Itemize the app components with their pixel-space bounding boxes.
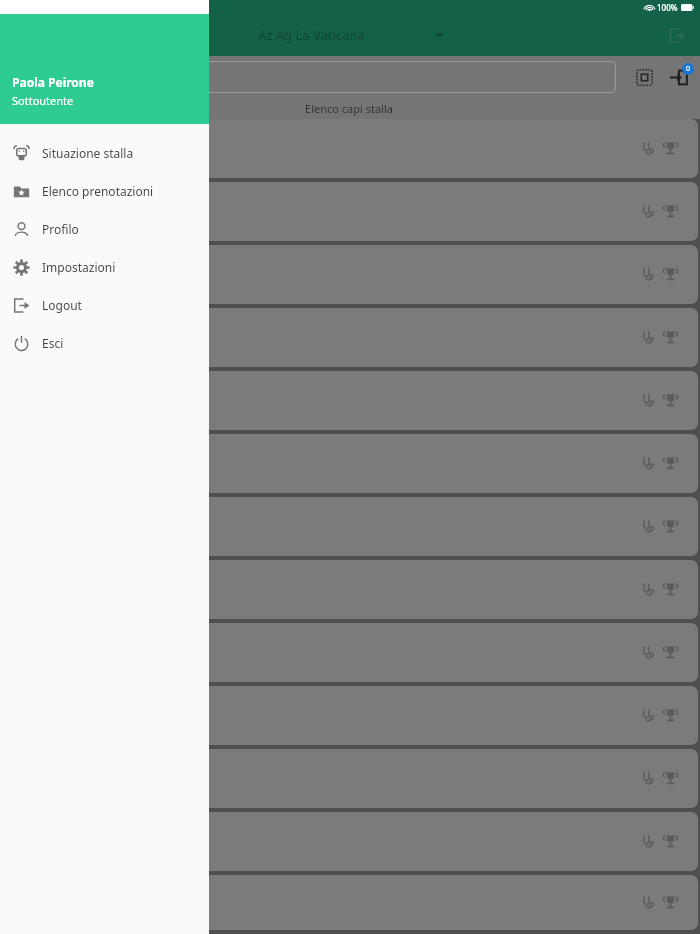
staticText: Az Ag La Vaticana xyxy=(258,26,365,44)
staticText: 100% xyxy=(657,2,678,13)
button[interactable] xyxy=(0,308,700,367)
button[interactable] xyxy=(0,434,700,493)
button[interactable] xyxy=(0,371,700,430)
button[interactable]: Profilo xyxy=(0,210,209,248)
staticText: Situazione stalla xyxy=(42,145,134,161)
button[interactable]: Selected animals xyxy=(660,59,696,95)
button[interactable]: Logout xyxy=(664,22,690,48)
staticText: Esci xyxy=(42,335,64,351)
staticText: Profilo xyxy=(42,221,79,237)
button[interactable] xyxy=(0,182,700,241)
staticText: Sottoutente xyxy=(12,93,74,108)
button[interactable] xyxy=(0,875,700,930)
button[interactable] xyxy=(6,61,616,93)
button[interactable] xyxy=(0,686,700,745)
button[interactable] xyxy=(0,812,700,871)
button[interactable] xyxy=(0,623,700,682)
button[interactable]: Situazione stalla xyxy=(0,134,209,172)
staticText: Logout xyxy=(42,297,82,313)
button[interactable]: Impostazioni xyxy=(0,248,209,286)
staticText: Paola Peirone xyxy=(12,74,94,90)
button[interactable]: Az Ag La Vaticana xyxy=(258,26,443,44)
staticText: Elenco capi stalla xyxy=(305,101,393,116)
button[interactable] xyxy=(0,119,700,178)
button[interactable] xyxy=(0,560,700,619)
button[interactable]: Elenco prenotazioni xyxy=(0,172,209,210)
button[interactable]: Esci xyxy=(0,324,209,362)
button[interactable]: Logout xyxy=(0,286,209,324)
button[interactable] xyxy=(0,245,700,304)
button[interactable]: Scan xyxy=(628,61,660,93)
staticText: Elenco prenotazioni xyxy=(42,183,154,199)
staticText: Impostazioni xyxy=(42,259,116,275)
button[interactable] xyxy=(0,749,700,808)
staticText: 0 xyxy=(686,64,691,74)
button[interactable] xyxy=(0,497,700,556)
